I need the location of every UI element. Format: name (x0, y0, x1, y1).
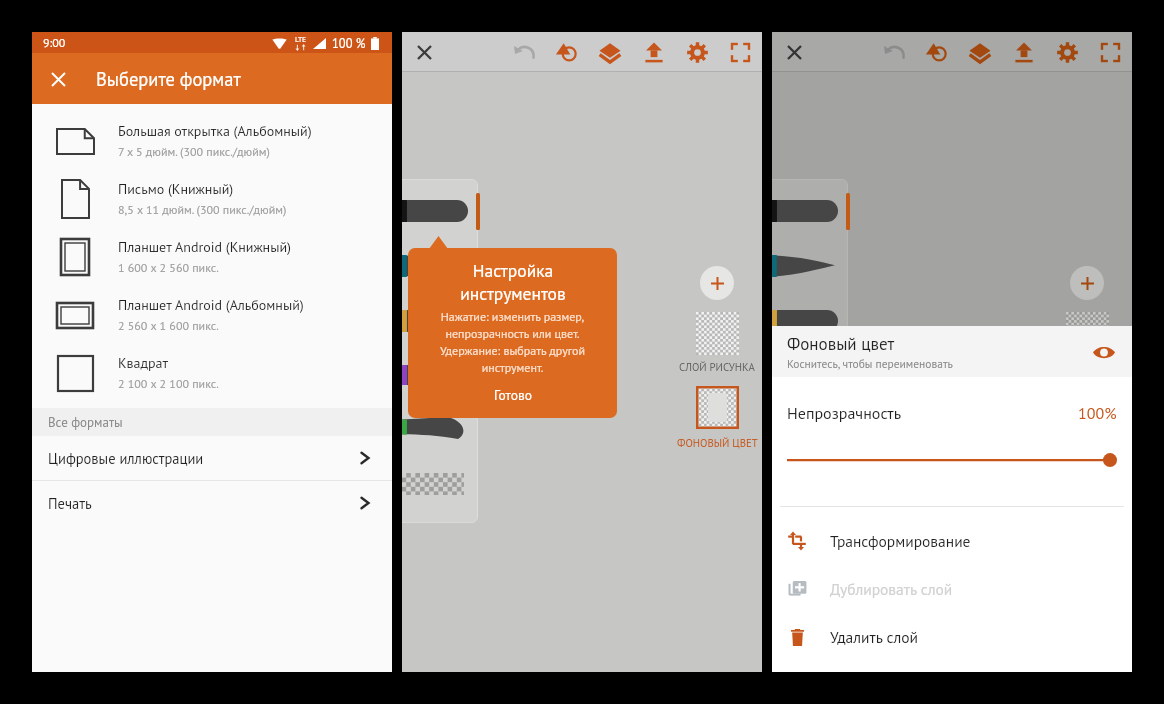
staticText: 7 x 5 дюйм. (300 пикс./дюйм) (118, 144, 270, 160)
staticText: 8,5 x 11 дюйм. (300 пикс./дюйм) (118, 202, 287, 218)
staticText: Готово (494, 386, 532, 403)
staticText: 2 560 x 1 600 пикс. (118, 318, 219, 334)
staticText: Планшет Android (Книжный) (118, 238, 291, 256)
staticText: 100% (1078, 403, 1117, 424)
staticText: Выберите формат (96, 67, 241, 91)
button[interactable]: Background colour layer (1066, 386, 1109, 429)
button[interactable]: Квадрат (32, 344, 392, 402)
button[interactable]: Планшет Android (Альбомный) (32, 286, 392, 344)
button[interactable]: Shape tool (546, 32, 586, 72)
button[interactable]: Цифровые иллюстрации (32, 436, 392, 480)
button[interactable]: Background colour layer (696, 386, 739, 429)
staticText: 9:00 (43, 35, 66, 51)
button[interactable]: Готово (482, 385, 544, 404)
staticText: LTE (295, 34, 307, 44)
button[interactable]: Drawing layer (696, 312, 739, 355)
staticText: Письмо (Книжный) (118, 180, 234, 198)
staticText: 100 % (332, 35, 366, 51)
button[interactable]: Layers (590, 32, 630, 72)
staticText: Дублировать слой (830, 579, 953, 599)
staticText: Коснитесь, чтобы переименовать (787, 356, 953, 371)
button[interactable]: Close (778, 36, 810, 68)
staticText: ФОНОВЫЙ ЦВЕТ (677, 436, 758, 450)
staticText: 2 100 x 2 100 пикс. (118, 376, 219, 392)
staticText: Трансформирование (830, 531, 971, 551)
staticText: Фоновый цвет (787, 333, 895, 355)
button[interactable]: Shape tool (916, 32, 956, 72)
button[interactable]: Трансформирование (772, 517, 1132, 565)
button[interactable]: Export (634, 32, 674, 72)
staticText: Большая открытка (Альбомный) (118, 122, 312, 140)
button[interactable]: Fullscreen (1090, 32, 1130, 72)
staticText: Планшет Android (Альбомный) (118, 296, 304, 314)
button[interactable]: Export (1004, 32, 1044, 72)
staticText: Непрозрачность (787, 403, 1078, 424)
button[interactable]: Fullscreen (720, 32, 760, 72)
button[interactable]: Undo (504, 32, 544, 72)
button[interactable]: Settings (677, 32, 717, 72)
button[interactable]: Close (408, 36, 440, 68)
button[interactable]: Close (41, 62, 75, 96)
button[interactable]: Планшет Android (Книжный) (32, 228, 392, 286)
button[interactable]: Большая открытка (Альбомный) (32, 112, 392, 170)
button[interactable]: Toggle layer visibility (1087, 335, 1121, 369)
button[interactable]: Удалить слой (772, 613, 1132, 661)
staticText: 1 600 x 2 560 пикс. (118, 260, 219, 276)
staticText: Удалить слой (830, 627, 919, 647)
button[interactable]: Письмо (Книжный) (32, 170, 392, 228)
button[interactable]: Drawing layer (1066, 312, 1109, 355)
staticText: Все форматы (48, 414, 123, 431)
button[interactable]: Дублировать слой (772, 565, 1132, 613)
button[interactable]: Add layer (1070, 266, 1104, 300)
button[interactable] (787, 424, 1117, 468)
staticText: Нажатие: изменить размер, непрозрачность… (440, 309, 585, 376)
staticText: СЛОЙ РИСУНКА (679, 360, 755, 374)
button[interactable]: Add layer (700, 266, 734, 300)
button[interactable]: Settings (1047, 32, 1087, 72)
staticText: Настройка инструментов (460, 259, 566, 305)
button[interactable]: Layers (960, 32, 1000, 72)
staticText: Печать (48, 494, 358, 513)
button[interactable]: Undo (874, 32, 914, 72)
staticText: Цифровые иллюстрации (48, 449, 358, 468)
button[interactable]: Печать (32, 481, 392, 525)
staticText: Квадрат (118, 354, 169, 372)
